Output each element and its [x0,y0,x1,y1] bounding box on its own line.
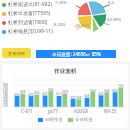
button[interactable]: 虹桥出发窗(TT595) [2,9,51,18]
staticText: 300 [70,96,76,100]
staticText: 虹桥磁悬浮(U99-11) [8,28,53,35]
staticText: -36.86% [74,23,90,29]
staticText: 今日作业 [75,117,93,123]
staticText: 500 [3,92,8,95]
staticText: 432 [98,92,104,96]
staticText: 554 [90,89,96,93]
staticText: 600 [3,89,8,92]
staticText: 286 [76,96,82,100]
staticText: 日时作业 [45,117,63,123]
staticText: 虹桥南进出(91-982) [8,1,52,8]
staticText: 7.38% [55,0,67,6]
staticText: 546 [104,89,110,93]
staticText: 100 [3,104,8,107]
staticText: 404 [14,93,20,97]
button[interactable]: 今日进度: 24656㎡ 85% [36,50,116,58]
staticText: 495 [20,90,26,94]
staticText: 200 [3,101,8,104]
staticText: 300 [3,98,8,101]
staticText: 413 [56,92,62,96]
staticText: 虹桥到达窗(T800) [8,19,48,26]
button[interactable]: 作业面积 [2,64,128,128]
staticText: 725 [118,84,124,88]
staticText: 查看明细 [8,51,25,56]
staticText: 500 [62,90,68,94]
staticText: 40.98% [107,17,122,23]
staticText: C-811 [21,108,33,114]
staticText: 作业面积 [54,68,77,75]
button[interactable]: 虹桥到达窗(T800) [2,18,48,27]
staticText: N9-33 [104,108,117,114]
button[interactable]: 查看明细 [2,48,31,58]
staticText: ASDG9 [74,108,89,114]
staticText: 700 [3,86,8,89]
staticText: 400 [3,95,8,98]
staticText: 今日进度: 24656㎡ 85% [52,51,101,57]
staticText: 425 [42,92,48,96]
staticText: 800 [3,83,8,86]
staticText: 586 [48,88,54,92]
button[interactable]: 虹桥南进出(91-982) [2,0,52,9]
staticText: 456 [34,91,40,95]
staticText: 虹桥出发窗(TT595) [8,10,51,17]
staticText: 3.2 [108,0,114,6]
staticText: 546 [112,89,118,93]
staticText: 403 [28,93,34,97]
button[interactable]: 虹桥磁悬浮(U99-11) [2,27,53,36]
staticText: 8.20% [54,22,66,28]
staticText: gv77 [48,108,58,114]
staticText: 346 [84,94,90,98]
